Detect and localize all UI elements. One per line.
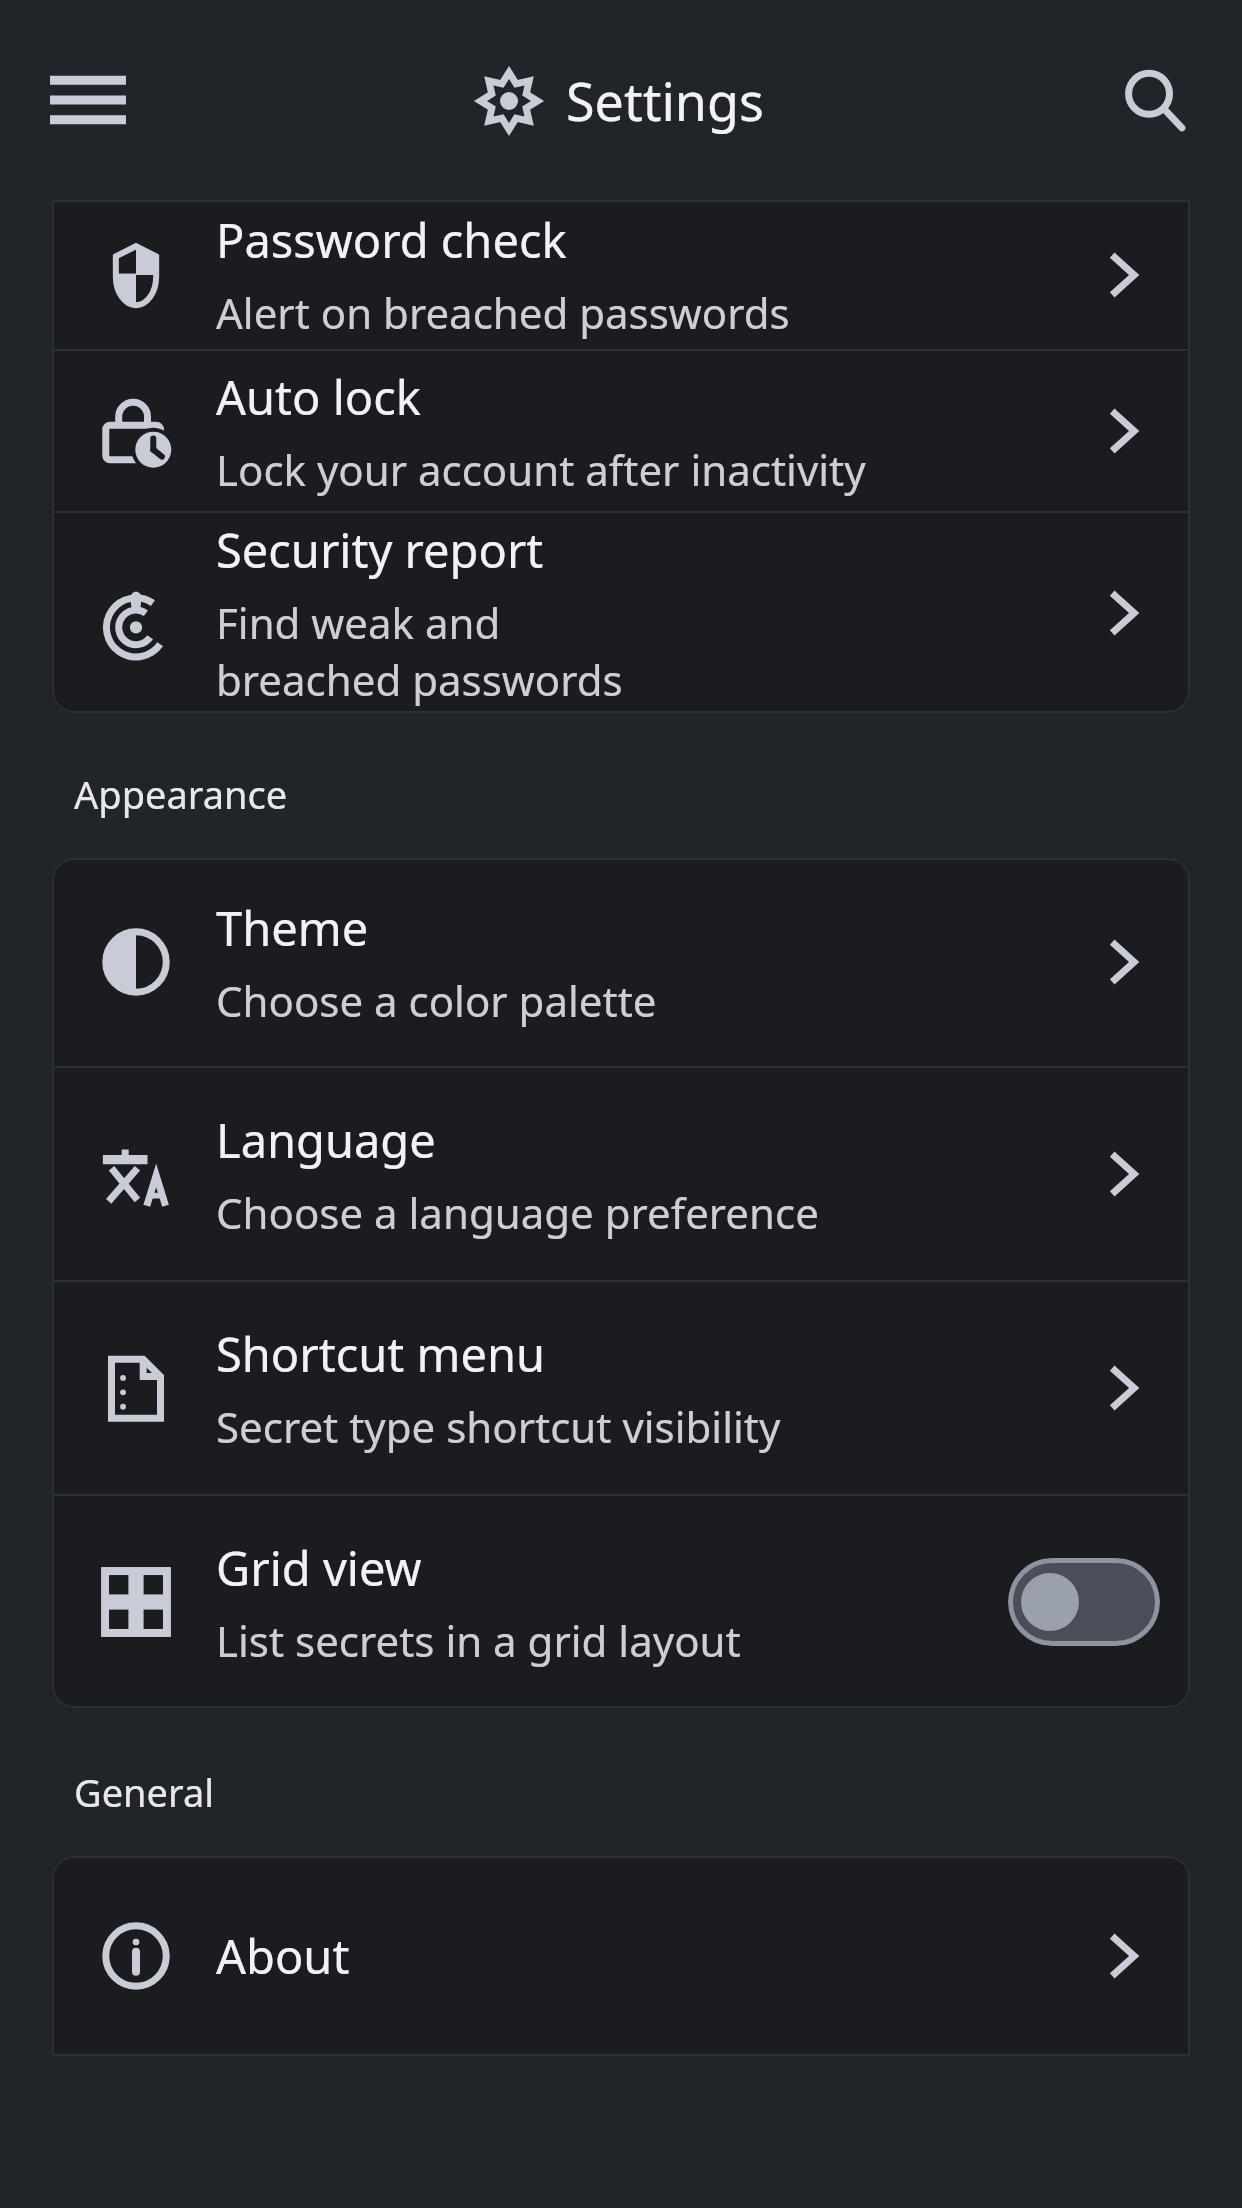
staticText: Lock your account after inactivity (216, 441, 866, 498)
button[interactable]: Password check (52, 200, 1190, 349)
button[interactable]: Theme (52, 858, 1190, 1066)
staticText: Theme (216, 896, 369, 960)
staticText: Security report (216, 518, 544, 582)
staticText: General (74, 1766, 215, 1818)
staticText: Grid view (216, 1536, 422, 1600)
button[interactable]: About (52, 1856, 1190, 2056)
staticText: Language (216, 1108, 436, 1172)
staticText: Alert on breached passwords (216, 284, 790, 341)
staticText: Auto lock (216, 365, 421, 429)
button[interactable]: Grid view (52, 1496, 1190, 1708)
staticText: List secrets in a grid layout (216, 1612, 741, 1669)
button[interactable]: Auto lock (52, 351, 1190, 511)
button[interactable]: Open navigation menu (40, 52, 136, 148)
staticText: Shortcut menu (216, 1322, 545, 1386)
staticText: Secret type shortcut visibility (216, 1398, 781, 1455)
button[interactable]: Grid view toggle, off (1008, 1558, 1160, 1646)
button[interactable]: Shortcut menu (52, 1282, 1190, 1494)
staticText: Appearance (74, 768, 288, 820)
staticText: Choose a language preference (216, 1184, 819, 1241)
button[interactable]: Search (1106, 52, 1202, 148)
staticText: Find weak and breached passwords (216, 594, 636, 708)
staticText: Password check (216, 208, 567, 272)
button[interactable]: Security report (52, 513, 1190, 713)
staticText: Choose a color palette (216, 972, 657, 1029)
button[interactable]: Language (52, 1068, 1190, 1280)
staticText: About (216, 1924, 350, 1988)
staticText: Settings (566, 65, 764, 136)
